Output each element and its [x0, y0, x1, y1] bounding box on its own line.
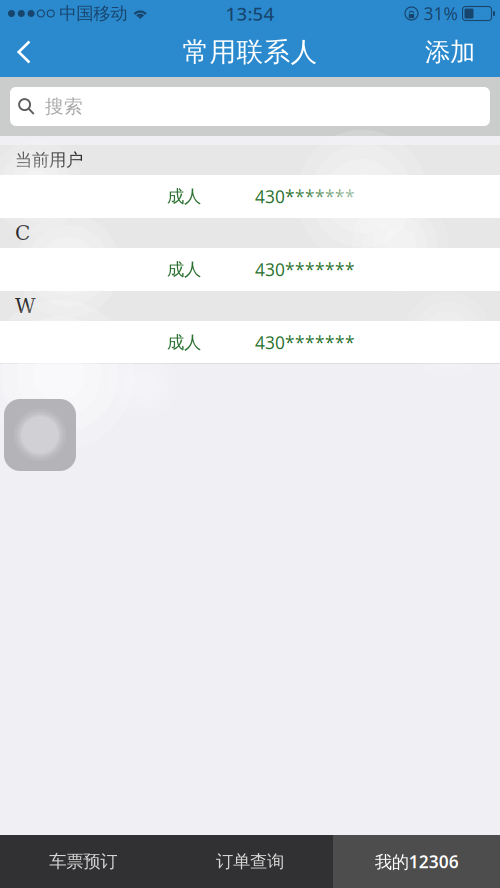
staticText: 中国移动	[59, 3, 127, 24]
staticText: 添加	[425, 36, 475, 67]
staticText: 成人	[167, 259, 201, 280]
staticText: 430*******	[255, 331, 355, 354]
button[interactable]: 成人	[0, 175, 500, 218]
staticText: 常用联系人	[182, 36, 317, 68]
staticText: 成人	[167, 186, 201, 207]
staticText: 31%	[423, 2, 457, 25]
staticText: C	[15, 221, 30, 245]
staticText: 430*******	[255, 258, 355, 281]
button[interactable]: 成人	[0, 248, 500, 291]
staticText: 当前用户	[15, 149, 83, 171]
staticText: 成人	[167, 332, 201, 353]
button[interactable]: 我的12306	[333, 835, 500, 888]
staticText: 我的12306	[375, 850, 459, 873]
staticText: 430*******	[255, 185, 355, 208]
button[interactable]: 添加	[405, 23, 500, 80]
staticText: W	[15, 294, 36, 318]
button[interactable]: 订单查询	[167, 835, 333, 888]
staticText: 车票预订	[49, 851, 117, 872]
button[interactable]: 辅助触控	[4, 399, 76, 471]
staticText: 搜索	[45, 95, 83, 118]
staticText: 订单查询	[216, 851, 284, 872]
button[interactable]: 成人	[0, 321, 500, 364]
staticText: 13:54	[225, 1, 274, 26]
button[interactable]: 搜索	[10, 87, 490, 126]
button[interactable]: 返回	[0, 27, 53, 77]
button[interactable]: 车票预订	[0, 835, 167, 888]
